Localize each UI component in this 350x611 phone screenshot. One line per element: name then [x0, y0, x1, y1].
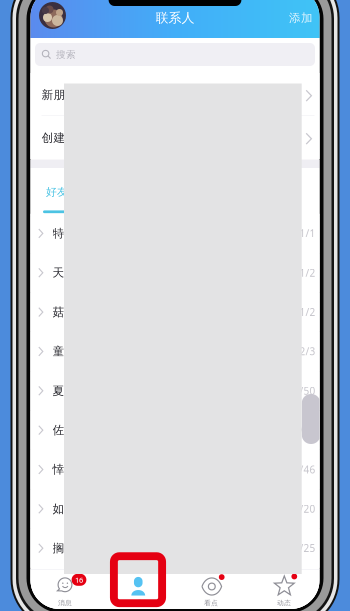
- staticText: 动态: [277, 599, 291, 607]
- staticText: 如此而已: [53, 501, 101, 516]
- staticText: 天天开心群: [53, 265, 113, 280]
- staticText: 创建群聊: [41, 131, 89, 145]
- staticText: 添加: [289, 11, 313, 25]
- staticText: 1/33: [294, 423, 316, 437]
- button[interactable]: [30, 253, 319, 292]
- button[interactable]: 添加: [284, 4, 318, 32]
- button[interactable]: [30, 292, 319, 332]
- button[interactable]: [30, 73, 319, 116]
- staticText: 搁浅的鱼: [53, 541, 101, 555]
- button[interactable]: [30, 214, 319, 253]
- staticText: 2/3: [300, 345, 316, 358]
- button[interactable]: 联系人: [102, 570, 175, 609]
- staticText: 特别关心: [53, 226, 101, 241]
- staticText: 1/1: [300, 227, 316, 240]
- button[interactable]: [30, 529, 319, 568]
- staticText: 联系人: [127, 599, 148, 607]
- staticText: 看点: [204, 599, 218, 607]
- button[interactable]: [30, 410, 319, 450]
- staticText: 新朋友: [41, 88, 77, 102]
- button[interactable]: [30, 116, 319, 159]
- staticText: 菇凉们: [53, 305, 89, 319]
- staticText: 夏天的风: [53, 383, 101, 398]
- button[interactable]: [175, 570, 247, 609]
- staticText: 1/2: [300, 266, 316, 279]
- staticText: 1/2: [300, 305, 316, 319]
- staticText: 9/25: [294, 541, 316, 555]
- button[interactable]: [30, 450, 319, 489]
- staticText: 4/50: [294, 384, 316, 398]
- button[interactable]: [30, 489, 319, 528]
- staticText: 消息: [58, 599, 72, 607]
- staticText: 3/20: [294, 502, 316, 516]
- button[interactable]: [247, 570, 319, 609]
- button[interactable]: [30, 332, 319, 371]
- staticText: 16: [75, 575, 83, 585]
- staticText: 联系人: [155, 10, 194, 26]
- button[interactable]: [29, 570, 101, 609]
- staticText: 搜索: [56, 48, 76, 61]
- button[interactable]: [30, 371, 319, 410]
- staticText: 佐佐木: [53, 423, 89, 437]
- button[interactable]: [43, 180, 91, 206]
- staticText: 悻福的人: [53, 462, 101, 477]
- staticText: 好友: [46, 185, 68, 199]
- button[interactable]: 搜索: [35, 43, 315, 66]
- staticText: 5/46: [294, 463, 316, 476]
- staticText: 童年伙伴: [53, 344, 101, 359]
